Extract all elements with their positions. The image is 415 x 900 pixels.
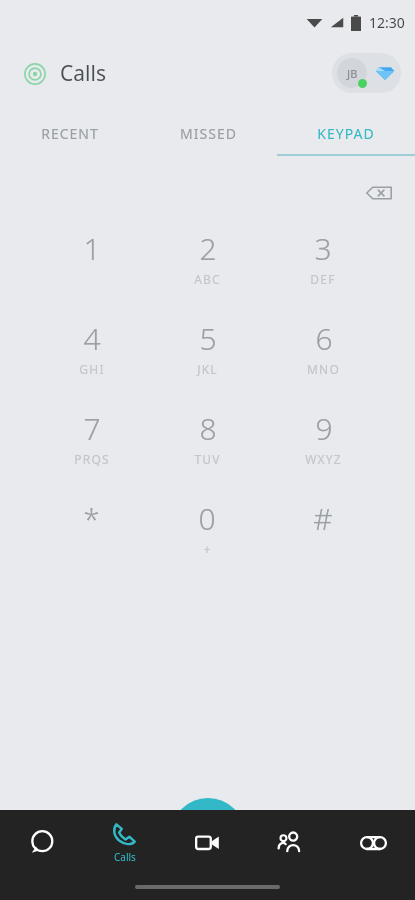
button[interactable]: 0	[149, 492, 265, 582]
staticText: GHI	[79, 361, 105, 377]
staticText: 3	[314, 228, 332, 269]
button[interactable]: Backspace	[357, 171, 401, 215]
staticText: 0	[198, 498, 216, 539]
button[interactable]: Voicemail	[332, 810, 415, 874]
button[interactable]: Video	[166, 810, 249, 874]
button[interactable]: KEYPAD	[277, 102, 415, 164]
button[interactable]: Profile and premium	[332, 53, 401, 93]
staticText: 4	[83, 318, 101, 359]
staticText: Calls	[60, 59, 106, 88]
button[interactable]: Calls	[83, 810, 166, 874]
button[interactable]: MISSED	[139, 102, 277, 164]
staticText: 12:30	[369, 13, 405, 32]
staticText: 9	[315, 408, 333, 449]
staticText: DEF	[310, 271, 336, 287]
staticText: JKL	[197, 361, 218, 377]
button[interactable]: Contacts	[249, 810, 332, 874]
button[interactable]: 3	[265, 222, 381, 312]
button[interactable]: Chats	[0, 810, 83, 874]
button[interactable]: 4	[34, 312, 149, 402]
staticText: 7	[83, 408, 101, 449]
staticText: WXYZ	[305, 451, 342, 467]
staticText: Calls	[114, 850, 136, 864]
staticText: MNO	[307, 361, 340, 377]
button[interactable]: #	[265, 492, 381, 582]
button[interactable]: 9	[265, 402, 381, 492]
button[interactable]: 5	[149, 312, 265, 402]
button[interactable]: *	[34, 492, 149, 582]
button[interactable]: 1	[34, 222, 149, 312]
staticText: TUV	[194, 451, 221, 467]
staticText: 1	[83, 228, 101, 269]
button[interactable]: 2	[149, 222, 265, 312]
staticText: KEYPAD	[317, 124, 375, 143]
staticText: 2	[199, 228, 217, 269]
button[interactable]: Calls	[24, 59, 106, 88]
staticText: JB	[347, 66, 358, 81]
staticText: *	[83, 498, 100, 539]
button[interactable]: 7	[34, 402, 149, 492]
staticText: +	[203, 541, 212, 557]
button[interactable]: 6	[265, 312, 381, 402]
staticText: ABC	[194, 271, 221, 287]
staticText: MISSED	[180, 124, 237, 143]
staticText: 6	[315, 318, 333, 359]
staticText: PRQS	[74, 451, 110, 467]
staticText: RECENT	[41, 124, 99, 143]
button[interactable]: RECENT	[0, 102, 139, 164]
staticText: 8	[199, 408, 217, 449]
button[interactable]: Call	[171, 798, 245, 872]
button[interactable]: 8	[149, 402, 265, 492]
staticText: 5	[199, 318, 217, 359]
staticText: #	[313, 498, 333, 539]
